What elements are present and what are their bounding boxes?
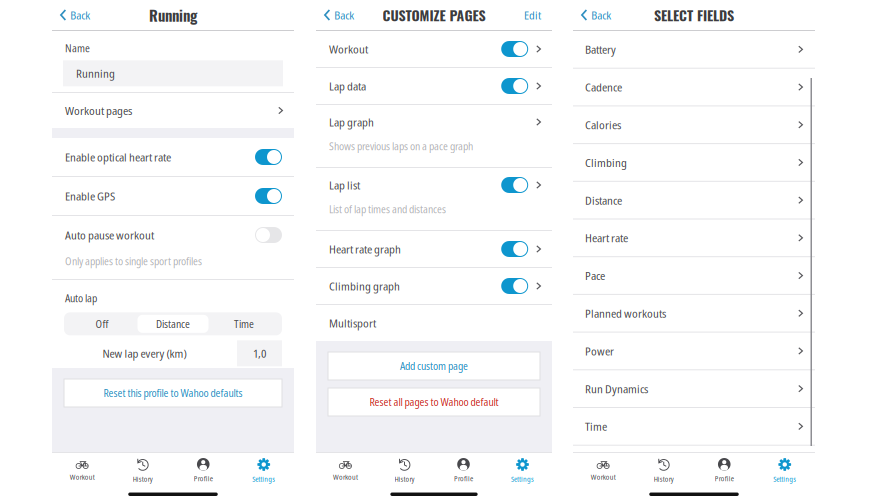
button[interactable]: Off: [66, 315, 137, 333]
staticText: Power: [585, 343, 614, 359]
staticText: New lap every (km): [102, 345, 186, 361]
staticText: History: [133, 474, 153, 484]
staticText: List of lap times and distances: [329, 202, 446, 216]
staticText: Distance: [585, 192, 622, 208]
staticText: Workout pages: [65, 103, 132, 118]
button[interactable]: Back: [52, 1, 96, 29]
button[interactable]: Settings: [754, 453, 815, 486]
staticText: Settings: [773, 474, 796, 484]
staticText: Profile: [454, 474, 473, 483]
staticText: Settings: [511, 474, 534, 484]
staticText: Enable GPS: [65, 188, 115, 204]
button[interactable]: Time: [573, 408, 815, 445]
button[interactable]: Auto pause workout: [52, 216, 294, 254]
staticText: Auto lap: [65, 291, 97, 305]
staticText: Calories: [585, 117, 621, 133]
button[interactable]: Workout: [316, 453, 375, 486]
staticText: Time: [234, 317, 254, 331]
button[interactable]: Workout: [52, 453, 112, 486]
button[interactable]: Power: [573, 333, 815, 369]
button[interactable]: Enable GPS: [52, 177, 294, 215]
button[interactable]: Add custom page: [316, 352, 552, 380]
staticText: Shows previous laps on a pace graph: [329, 139, 473, 153]
staticText: Cadence: [585, 79, 622, 95]
button[interactable]: Back: [573, 1, 617, 29]
button[interactable]: Lap graph: [316, 105, 552, 167]
staticText: Lap list: [329, 177, 360, 193]
staticText: Workout: [70, 472, 95, 482]
button[interactable]: Time: [208, 315, 279, 333]
staticText: Reset all pages to Wahoo default: [369, 395, 498, 409]
button[interactable]: Lap data: [316, 68, 552, 104]
button[interactable]: History: [112, 453, 173, 486]
staticText: Battery: [585, 41, 616, 57]
button[interactable]: Cadence: [573, 69, 815, 105]
button[interactable]: Climbing: [573, 144, 815, 181]
button[interactable]: Workout: [573, 453, 633, 486]
staticText: History: [394, 474, 414, 484]
staticText: Planned workouts: [585, 305, 666, 321]
button[interactable]: Pace: [573, 257, 815, 294]
staticText: Distance: [156, 317, 190, 331]
staticText: Add custom page: [400, 359, 468, 373]
staticText: Workout: [591, 472, 616, 482]
staticText: Workout: [333, 472, 358, 482]
staticText: Edit: [524, 7, 541, 23]
button[interactable]: Workout pages: [52, 93, 294, 128]
staticText: Auto pause workout: [65, 227, 154, 243]
button[interactable]: Lap list: [316, 168, 552, 230]
button[interactable]: Profile: [173, 453, 233, 486]
button[interactable]: Edit: [513, 1, 552, 29]
staticText: Profile: [715, 474, 734, 483]
staticText: Heart rate graph: [329, 241, 401, 257]
staticText: Climbing: [585, 154, 627, 170]
staticText: CUSTOMIZE PAGES: [382, 5, 485, 25]
staticText: 1,0: [253, 345, 266, 361]
staticText: Pace: [585, 268, 605, 283]
button[interactable]: Run Dynamics: [573, 370, 815, 407]
button[interactable]: Heart rate graph: [316, 231, 552, 267]
staticText: Profile: [194, 474, 213, 483]
button[interactable]: Enable optical heart rate: [52, 138, 294, 176]
staticText: Time: [585, 418, 607, 434]
button[interactable]: Distance: [573, 182, 815, 218]
button[interactable]: Distance: [137, 315, 208, 333]
staticText: Running: [149, 4, 197, 26]
staticText: Running: [76, 65, 115, 81]
staticText: Back: [591, 7, 611, 23]
staticText: Multisport: [329, 315, 376, 331]
staticText: History: [654, 474, 674, 484]
staticText: Reset this profile to Wahoo defaults: [103, 386, 242, 400]
staticText: Back: [70, 7, 90, 23]
button[interactable]: Reset all pages to Wahoo default: [316, 388, 552, 416]
staticText: Heart rate: [585, 230, 628, 246]
staticText: Settings: [252, 474, 275, 484]
staticText: Enable optical heart rate: [65, 149, 171, 165]
button[interactable]: Settings: [233, 453, 294, 486]
staticText: Lap data: [329, 78, 366, 94]
staticText: Run Dynamics: [585, 381, 648, 396]
staticText: Off: [95, 317, 108, 331]
staticText: Workout: [329, 41, 368, 57]
button[interactable]: Profile: [694, 453, 754, 486]
staticText: Climbing graph: [329, 278, 400, 294]
staticText: Only applies to single sport profiles: [65, 254, 202, 268]
button[interactable]: Planned workouts: [573, 295, 815, 332]
button[interactable]: Back: [316, 1, 360, 29]
button[interactable]: History: [633, 453, 694, 486]
button[interactable]: History: [375, 453, 434, 486]
button[interactable]: Heart rate: [573, 219, 815, 256]
button[interactable]: Battery: [573, 31, 815, 68]
button[interactable]: Reset this profile to Wahoo defaults: [52, 379, 294, 407]
button[interactable]: Climbing graph: [316, 268, 552, 304]
staticText: Lap graph: [329, 114, 374, 130]
button[interactable]: Settings: [493, 453, 552, 486]
button[interactable]: Profile: [434, 453, 493, 486]
staticText: Back: [334, 7, 354, 23]
staticText: SELECT FIELDS: [654, 5, 734, 25]
button[interactable]: Workout: [316, 31, 552, 67]
staticText: Name: [65, 41, 90, 55]
button[interactable]: Calories: [573, 106, 815, 143]
